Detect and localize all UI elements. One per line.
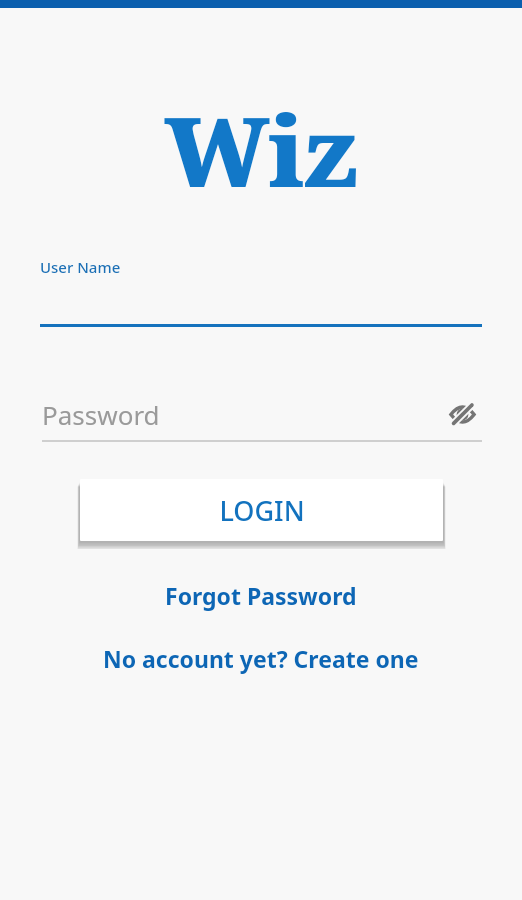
staticText: Wiz (165, 84, 357, 215)
button[interactable]: Password (42, 397, 442, 432)
button[interactable]: User Name (0, 257, 522, 327)
staticText: Forgot Password (165, 580, 357, 611)
staticText: No account yet? Create one (103, 643, 419, 674)
button[interactable]: Forgot Password (153, 574, 369, 617)
staticText: LOGIN (219, 492, 305, 529)
button[interactable]: LOGIN (80, 479, 443, 541)
staticText: User Name (40, 257, 121, 277)
button[interactable]: No account yet? Create one (91, 637, 431, 680)
button[interactable]: Show password (442, 394, 482, 434)
staticText: Password (42, 397, 160, 432)
